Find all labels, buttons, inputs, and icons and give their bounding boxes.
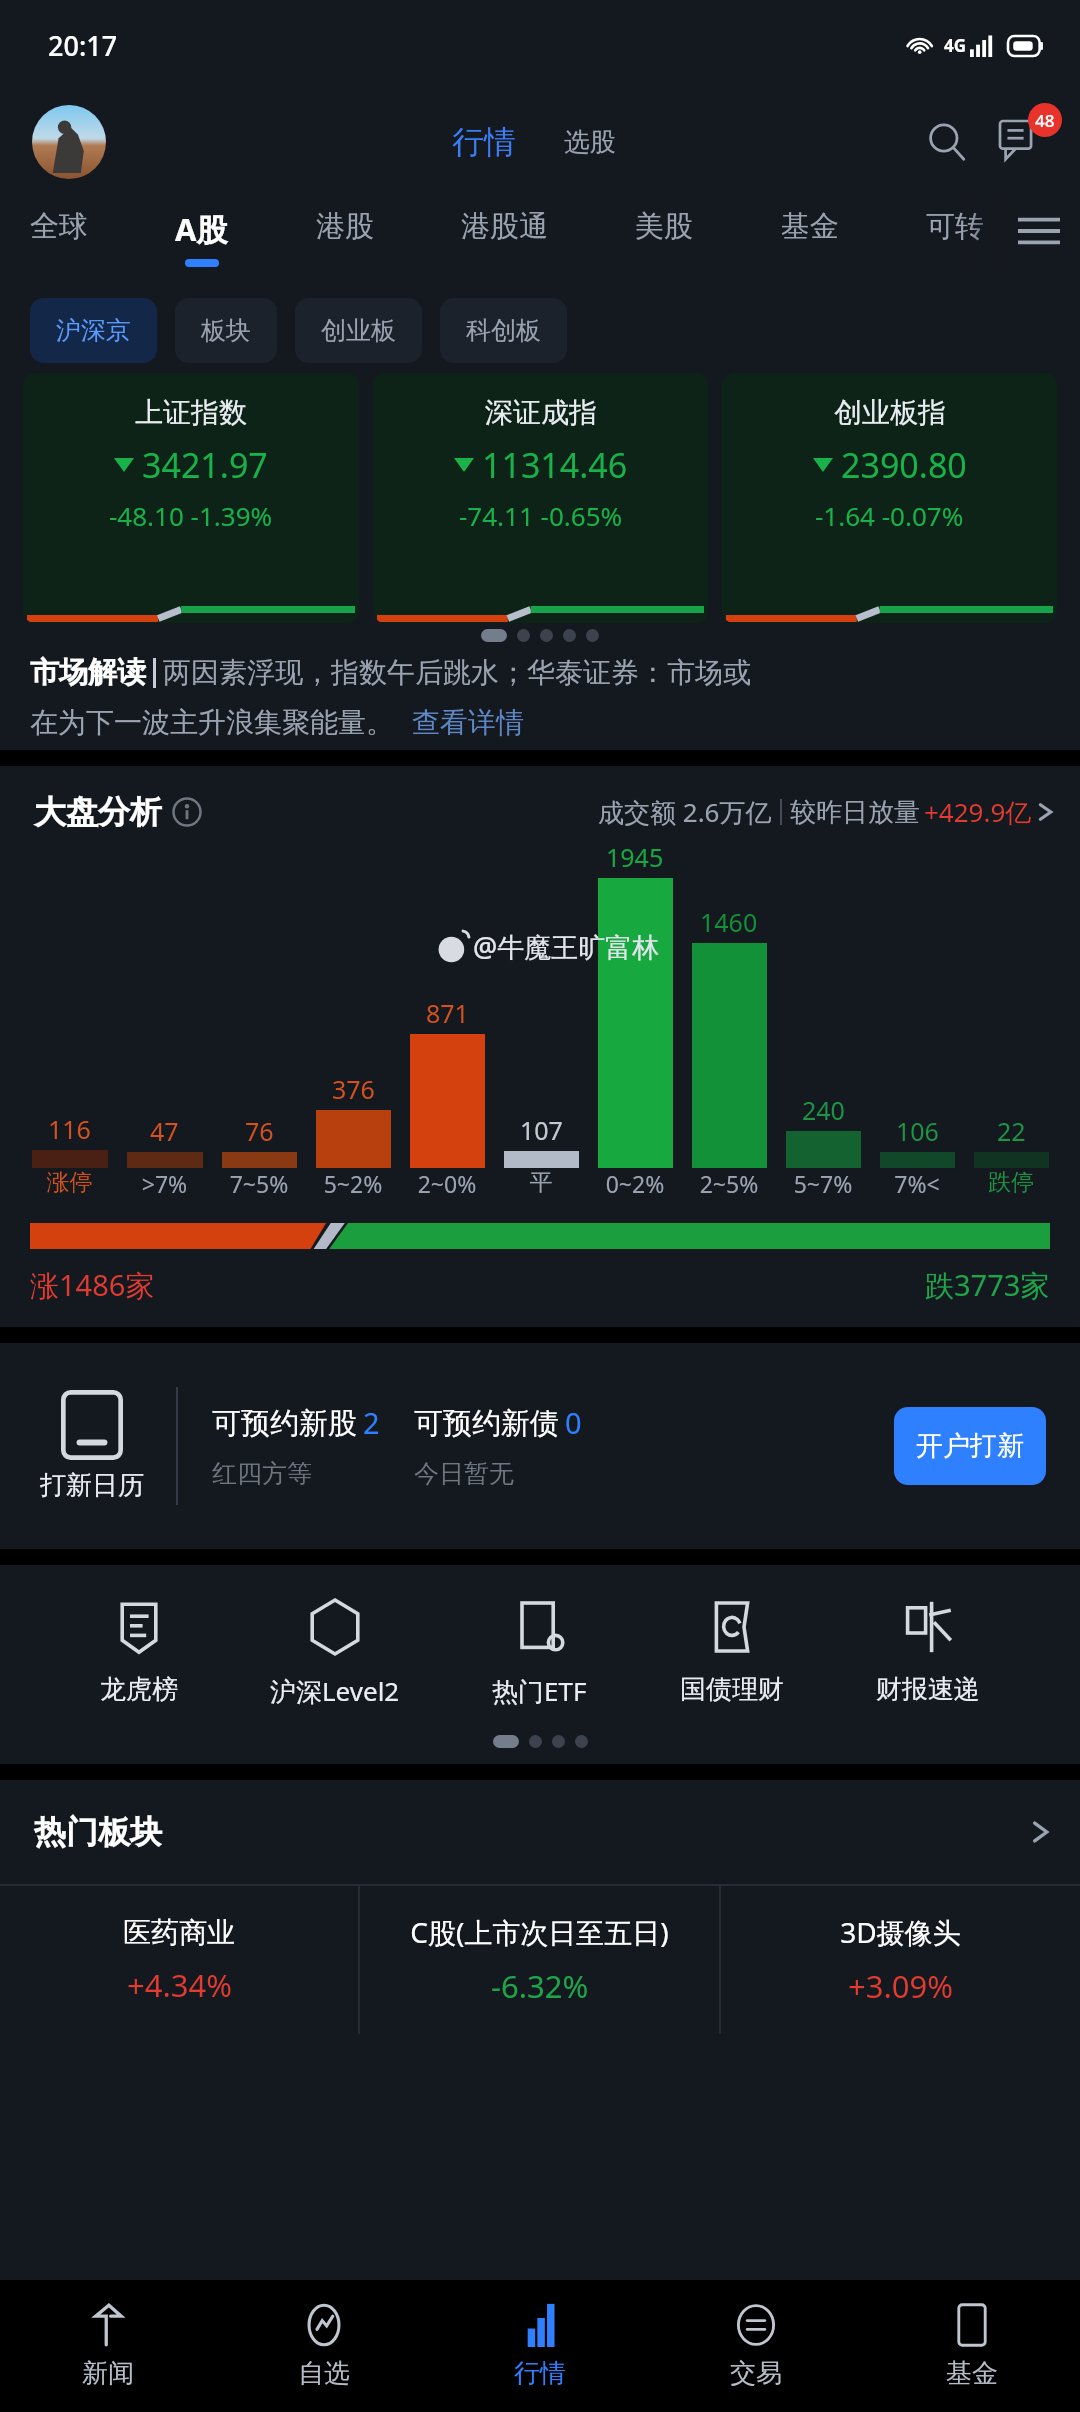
staticText: 2~0% <box>400 1168 494 1199</box>
staticText: 871 <box>426 996 469 1030</box>
staticText: 2 <box>363 1403 380 1442</box>
button[interactable]: 可预约新股 <box>212 1403 380 1489</box>
button[interactable]: 沪深Level2 <box>262 1593 408 1713</box>
staticText: 3D摄像头 <box>840 1913 961 1951</box>
staticText: +4.34% <box>127 1964 232 2006</box>
staticText: 20:17 <box>48 27 118 64</box>
staticText: 106 <box>896 1114 939 1148</box>
button[interactable]: 基金 <box>781 194 839 262</box>
button[interactable]: Messages <box>988 109 1054 175</box>
staticText: 4G <box>944 34 967 57</box>
staticText: 热门板块 <box>34 1812 162 1852</box>
button[interactable]: 创业板指 <box>722 373 1057 623</box>
button[interactable]: 港股 <box>316 194 374 262</box>
button[interactable]: 热门ETF <box>484 1593 595 1713</box>
button[interactable]: 可转 <box>926 194 984 262</box>
button[interactable]: 深证成指 <box>373 373 708 623</box>
staticText: 较昨日放量 <box>790 796 920 829</box>
button[interactable]: Profile <box>32 105 106 179</box>
staticText: 跌停 <box>964 1168 1058 1197</box>
staticText: 2390.80 <box>841 442 967 488</box>
staticText: 11314.46 <box>482 442 628 488</box>
button[interactable]: 交易 <box>648 2280 864 2412</box>
staticText: 0~2% <box>588 1168 682 1199</box>
staticText: 5~2% <box>306 1168 400 1199</box>
staticText: 在为下一波主升浪集聚能量。 <box>30 705 394 740</box>
button[interactable]: 财报速递 <box>868 1593 988 1710</box>
staticText: 红四方等 <box>212 1458 312 1489</box>
button[interactable]: 美股 <box>635 194 693 262</box>
staticText: 涨停 <box>22 1168 117 1197</box>
button[interactable]: 市场解读 <box>30 654 1050 740</box>
button[interactable]: 全球 <box>30 194 88 262</box>
staticText: -1.64 -0.07% <box>815 498 964 533</box>
staticText: 涨1486家 <box>30 1265 155 1305</box>
button[interactable]: 行情 <box>432 2280 648 2412</box>
staticText: -74.11 -0.65% <box>459 498 623 533</box>
button[interactable]: IPO <box>34 1390 150 1502</box>
staticText: 沪深京 <box>56 315 131 346</box>
button[interactable]: 医药商业 <box>0 1886 358 2034</box>
staticText: 116 <box>48 1112 91 1146</box>
button[interactable]: 选股 <box>554 120 626 165</box>
button[interactable]: 龙虎榜 <box>92 1593 186 1710</box>
button[interactable]: 港股通 <box>461 194 548 262</box>
staticText: 查看详情 <box>412 705 524 740</box>
staticText: 开户打新 <box>916 1429 1024 1463</box>
button[interactable]: 上证指数 <box>23 373 359 623</box>
button[interactable]: 板块 <box>175 298 277 363</box>
button[interactable]: 3D摄像头 <box>721 1886 1080 2034</box>
staticText: 交易 <box>730 2357 782 2390</box>
staticText: 行情 <box>452 122 516 162</box>
staticText: 新闻 <box>82 2357 134 2390</box>
staticText: 今日暂无 <box>414 1458 514 1489</box>
staticText: 行情 <box>514 2357 566 2390</box>
staticText: 48 <box>1035 109 1055 132</box>
staticText: 港股通 <box>461 208 548 245</box>
button[interactable]: A股 <box>175 194 228 267</box>
staticText: 深证成指 <box>485 395 597 430</box>
staticText: 上证指数 <box>135 395 247 430</box>
button[interactable]: 沪深京 <box>30 298 157 363</box>
button[interactable]: 热门板块 <box>34 1780 1050 1884</box>
button[interactable]: 自选 <box>216 2280 432 2412</box>
staticText: 平 <box>494 1168 588 1197</box>
button[interactable]: 开户打新 <box>894 1407 1046 1485</box>
staticText: 可预约新债 <box>414 1405 559 1442</box>
staticText: 美股 <box>635 208 693 245</box>
staticText: 376 <box>332 1072 375 1106</box>
staticText: 打新日历 <box>40 1469 144 1502</box>
staticText: 可预约新股 <box>212 1405 357 1442</box>
staticText: -48.10 -1.39% <box>109 498 273 533</box>
staticText: 创业板指 <box>834 395 946 430</box>
button[interactable]: 国债理财 <box>672 1593 792 1710</box>
staticText: 大盘分析 <box>34 792 162 832</box>
staticText: 选股 <box>564 126 616 159</box>
staticText: 7%< <box>870 1168 964 1199</box>
button[interactable]: More tabs <box>1011 203 1067 259</box>
staticText: 全球 <box>30 208 88 245</box>
staticText: 基金 <box>946 2357 998 2390</box>
button[interactable]: 基金 <box>864 2280 1080 2412</box>
staticText: 2~5% <box>682 1168 776 1199</box>
staticText: 科创板 <box>466 315 541 346</box>
staticText: 107 <box>520 1113 563 1147</box>
button[interactable]: 行情 <box>442 116 526 168</box>
button[interactable]: 创业板 <box>295 298 422 363</box>
staticText: 国债理财 <box>680 1673 784 1706</box>
staticText: 76 <box>245 1114 274 1148</box>
staticText: 板块 <box>201 315 251 346</box>
button[interactable]: 大盘分析 <box>34 792 1054 832</box>
button[interactable]: 新闻 <box>0 2280 216 2412</box>
staticText: 财报速递 <box>876 1673 980 1706</box>
button[interactable]: C股(上市次日至五日) <box>360 1886 719 2034</box>
button[interactable]: 可预约新债 <box>414 1403 582 1489</box>
staticText: 自选 <box>298 2357 350 2390</box>
button[interactable]: 科创板 <box>440 298 567 363</box>
button[interactable]: Search <box>916 111 978 173</box>
staticText: 沪深Level2 <box>270 1673 400 1709</box>
staticText: 1945 <box>606 840 664 874</box>
staticText: >7% <box>117 1168 212 1199</box>
staticText: 47 <box>150 1114 179 1148</box>
staticText: 医药商业 <box>123 1915 235 1950</box>
